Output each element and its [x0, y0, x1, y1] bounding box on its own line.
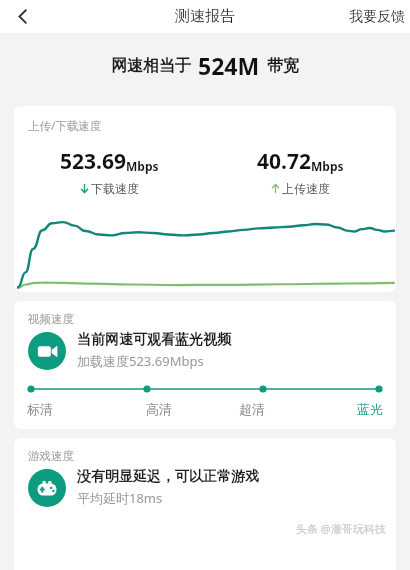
staticText: Mbps: [311, 158, 344, 174]
staticText: 上传/下载速度: [28, 118, 102, 134]
staticText: 下载速度: [91, 181, 139, 196]
staticText: 平均延时18ms: [77, 489, 163, 507]
button[interactable]: 高清: [112, 401, 205, 417]
staticText: 超清: [239, 401, 265, 417]
button[interactable]: 蓝光: [298, 401, 391, 417]
staticText: 游戏速度: [28, 449, 74, 463]
staticText: 上传速度: [282, 181, 330, 196]
staticText: 蓝光: [357, 401, 383, 417]
staticText: 标清: [27, 401, 53, 417]
staticText: 网速相当于: [111, 56, 191, 76]
staticText: 加载速度523.69Mbps: [77, 352, 204, 370]
staticText: 523.69: [60, 147, 126, 176]
button[interactable]: Back: [4, 0, 40, 33]
staticText: 当前网速可观看蓝光视频: [77, 331, 231, 349]
staticText: 头条 @澈哥玩科技: [296, 521, 386, 536]
button[interactable]: 视频速度: [14, 301, 396, 429]
staticText: 我要反馈: [349, 8, 405, 26]
staticText: 40.72: [257, 147, 311, 176]
staticText: 带宽: [267, 56, 299, 76]
staticText: 没有明显延迟，可以正常游戏: [77, 468, 259, 486]
staticText: 视频速度: [28, 312, 74, 326]
button[interactable]: 游戏速度: [14, 438, 396, 570]
button[interactable]: 我要反馈: [344, 1, 410, 33]
staticText: 524M: [198, 50, 260, 81]
staticText: 测速报告: [175, 7, 235, 26]
button[interactable]: 标清: [19, 401, 112, 417]
button[interactable]: 上传/下载速度: [14, 106, 396, 292]
staticText: Mbps: [126, 158, 159, 174]
staticText: 高清: [146, 401, 172, 417]
button[interactable]: 超清: [205, 401, 298, 417]
